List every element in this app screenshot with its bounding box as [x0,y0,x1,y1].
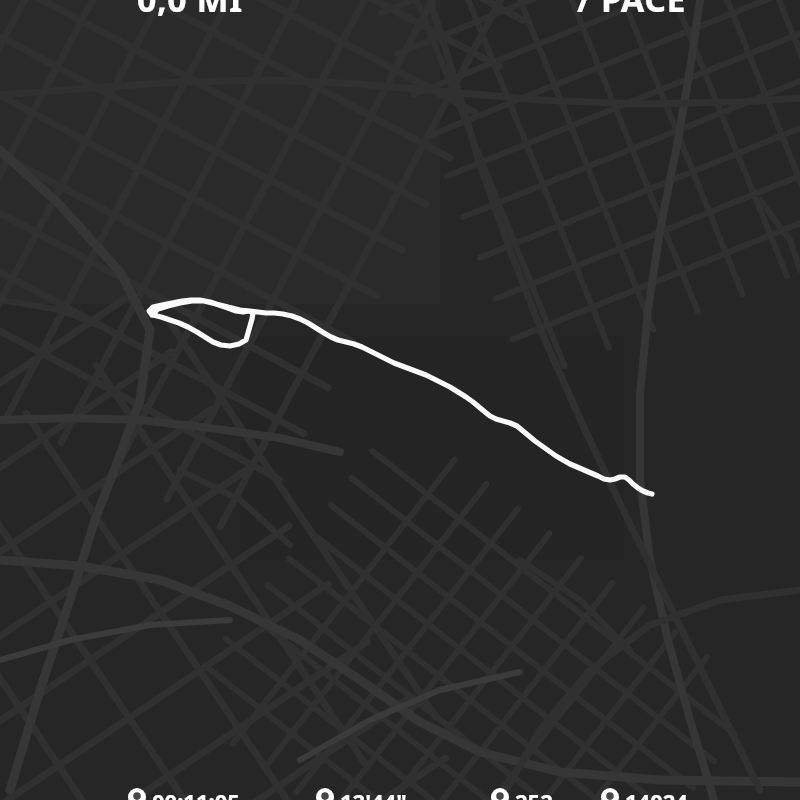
button[interactable]: Route map [0,0,800,800]
button[interactable]: Activity statistics [0,0,800,800]
